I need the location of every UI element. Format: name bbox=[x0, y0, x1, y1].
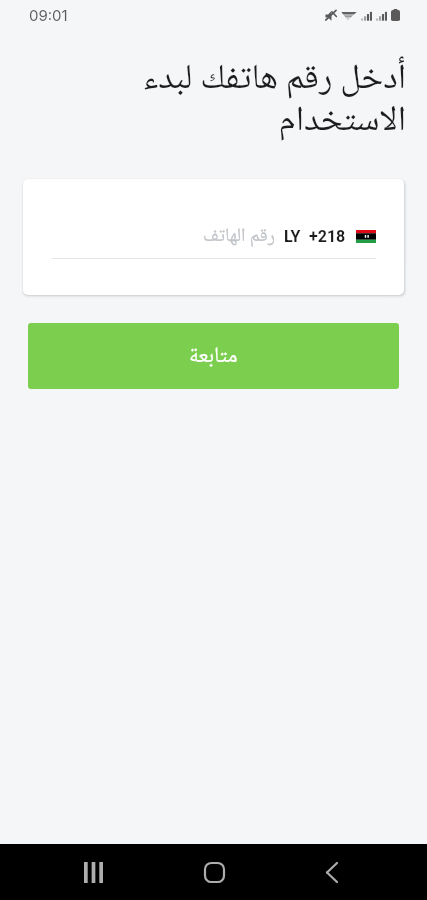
button[interactable]: Back bbox=[302, 844, 362, 900]
button[interactable]: Recent apps bbox=[63, 844, 123, 900]
button[interactable]: رقم الهاتف bbox=[176, 221, 276, 251]
button[interactable]: متابعة bbox=[28, 323, 399, 389]
button[interactable]: Home bbox=[184, 844, 244, 900]
staticText: متابعة bbox=[189, 338, 238, 375]
staticText: أدخل رقم هاتفك لبدء الاستخدام bbox=[120, 51, 406, 152]
button[interactable]: LY bbox=[284, 221, 376, 251]
staticText: +218 bbox=[309, 227, 346, 246]
staticText: 09:01 bbox=[29, 6, 68, 24]
staticText: LY bbox=[284, 227, 301, 246]
staticText: رقم الهاتف bbox=[203, 221, 276, 251]
